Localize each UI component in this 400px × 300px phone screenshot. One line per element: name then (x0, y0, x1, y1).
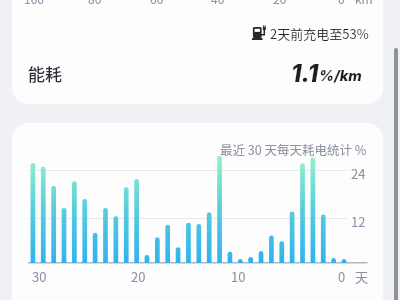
staticText: 20 (273, 0, 287, 7)
staticText: 天 (355, 267, 369, 286)
staticText: 0 (338, 267, 346, 286)
staticText: km (355, 0, 373, 7)
staticText: 1.1 (291, 59, 319, 88)
staticText: 24 (351, 164, 366, 183)
staticText: 12 (351, 212, 366, 231)
staticText: 40 (211, 0, 225, 7)
staticText: 能耗 (28, 61, 62, 86)
staticText: %/km (319, 67, 362, 85)
staticText: 60 (150, 0, 164, 7)
staticText: 80 (88, 0, 102, 7)
staticText: 最近 30 天每天耗电统计 % (220, 140, 367, 158)
staticText: 20 (131, 267, 146, 286)
staticText: 10 (231, 267, 246, 286)
button[interactable] (12, 123, 383, 300)
staticText: 0 (338, 0, 345, 7)
button[interactable] (12, 0, 383, 104)
staticText: 2天前充电至53% (270, 24, 369, 41)
staticText: 30 (32, 267, 47, 286)
staticText: 100 (24, 0, 44, 7)
